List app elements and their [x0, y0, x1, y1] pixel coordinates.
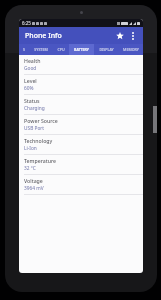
button[interactable]: Temperature [19, 155, 143, 174]
button[interactable]: CPU [53, 44, 69, 55]
staticText: Good [24, 65, 37, 72]
staticText: Phone Info [25, 31, 62, 41]
staticText: 32 °C [24, 165, 36, 172]
button[interactable]: Power Source [19, 115, 143, 134]
staticText: DISPLAY [99, 47, 114, 52]
button[interactable]: SYSTEM [28, 44, 53, 55]
staticText: 3964 mV [24, 185, 44, 192]
button[interactable]: Status [19, 95, 143, 114]
staticText: Status [24, 97, 40, 104]
button[interactable]: Health [19, 55, 143, 74]
button[interactable]: Level [19, 75, 143, 94]
button[interactable]: More options [127, 30, 139, 42]
staticText: Charging [24, 105, 45, 112]
button[interactable]: S [19, 44, 28, 55]
staticText: Temperature [24, 157, 57, 164]
staticText: SYSTEM [34, 47, 48, 52]
staticText: S [23, 47, 25, 52]
staticText: Technology [24, 137, 53, 144]
staticText: CPU [57, 47, 65, 52]
staticText: BATTERY [74, 47, 89, 52]
staticText: Health [24, 57, 41, 64]
staticText: MEMORY [123, 47, 139, 52]
button[interactable]: Technology [19, 135, 143, 154]
staticText: Level [24, 77, 37, 84]
staticText: Li-Ion [24, 145, 37, 152]
button[interactable]: DISPLAY [94, 44, 118, 55]
staticText: Voltage [24, 177, 43, 184]
button[interactable]: MEMORY [118, 44, 143, 55]
staticText: 6:25 [22, 20, 31, 26]
button[interactable]: BATTERY [69, 44, 94, 55]
staticText: 60% [24, 85, 34, 92]
button[interactable]: Voltage [19, 175, 143, 194]
staticText: USB Port [24, 125, 45, 132]
staticText: Power Source [24, 117, 58, 124]
button[interactable]: Favorite [113, 29, 126, 42]
